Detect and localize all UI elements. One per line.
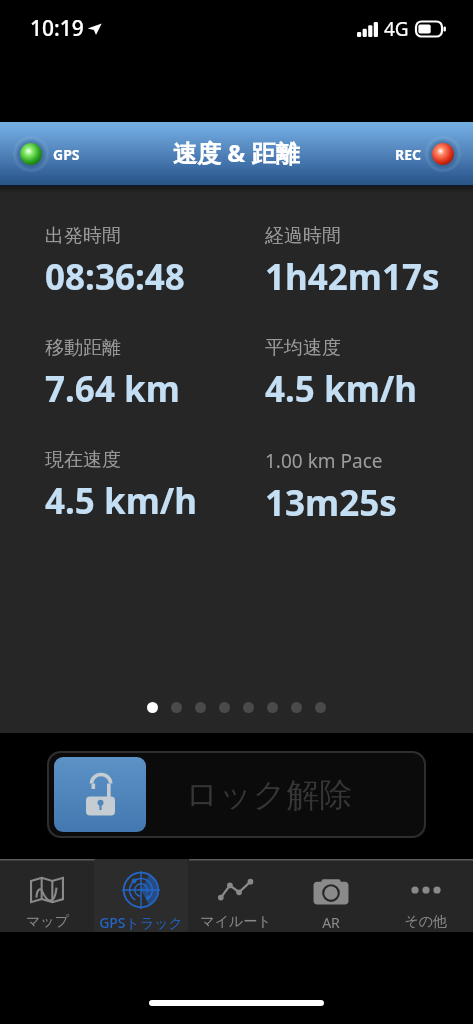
- staticText: 08:36:48: [45, 253, 185, 301]
- staticText: 移動距離: [45, 336, 121, 360]
- staticText: 13m25s: [265, 479, 397, 527]
- button[interactable]: ロック解除: [47, 751, 426, 838]
- button[interactable]: Record: [391, 135, 466, 173]
- staticText: 7.64 km: [45, 365, 180, 413]
- staticText: 速度 & 距離: [173, 136, 300, 169]
- staticText: 出発時間: [45, 224, 121, 248]
- staticText: 現在速度: [45, 448, 121, 472]
- button[interactable]: GPSトラック: [94, 859, 188, 932]
- staticText: ロック解除: [185, 774, 353, 816]
- button[interactable]: マイルート: [188, 859, 283, 932]
- staticText: 4.5 km/h: [45, 477, 198, 525]
- staticText: マップ: [26, 913, 69, 931]
- staticText: 平均速度: [265, 336, 341, 360]
- staticText: 経過時間: [265, 224, 341, 248]
- staticText: GPSトラック: [99, 913, 183, 932]
- staticText: AR: [322, 913, 340, 932]
- staticText: 4G: [384, 16, 409, 42]
- button[interactable]: その他: [378, 859, 473, 932]
- button[interactable]: GPS status: [8, 135, 84, 173]
- staticText: その他: [404, 913, 447, 931]
- staticText: REC: [395, 145, 422, 164]
- staticText: 1h42m17s: [265, 253, 440, 301]
- staticText: 10:19: [30, 14, 84, 43]
- button[interactable]: AR: [283, 859, 378, 932]
- staticText: マイルート: [200, 913, 272, 931]
- staticText: 4.5 km/h: [265, 365, 418, 413]
- button[interactable]: マップ: [0, 859, 94, 932]
- staticText: GPS: [53, 145, 80, 164]
- staticText: 1.00 km Pace: [265, 448, 383, 474]
